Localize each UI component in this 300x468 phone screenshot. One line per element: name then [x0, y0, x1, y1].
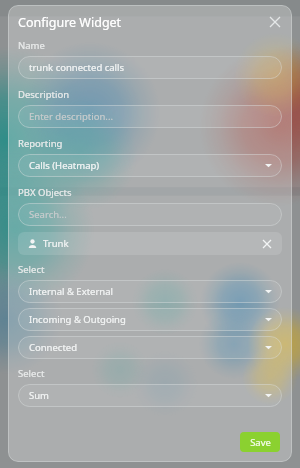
- button[interactable]: Close: [264, 11, 286, 33]
- staticText: Incoming & Outgoing: [29, 313, 126, 326]
- staticText: Select: [18, 263, 45, 276]
- button[interactable]: Internal & External: [18, 280, 282, 303]
- button[interactable]: Sum: [18, 384, 282, 407]
- staticText: Select: [18, 367, 45, 380]
- staticText: Internal & External: [29, 285, 114, 298]
- staticText: Enter description...: [29, 110, 113, 123]
- staticText: Reporting: [18, 137, 63, 150]
- staticText: Search...: [29, 208, 67, 221]
- staticText: Calls (Heatmap): [29, 159, 100, 172]
- button[interactable]: trunk connected calls: [18, 56, 282, 79]
- staticText: Sum: [29, 389, 49, 402]
- staticText: trunk connected calls: [29, 61, 125, 74]
- staticText: Description: [18, 88, 70, 101]
- button[interactable]: Save: [240, 432, 280, 452]
- staticText: PBX Objects: [18, 186, 72, 199]
- button[interactable]: Trunk: [18, 232, 282, 255]
- button[interactable]: Incoming & Outgoing: [18, 308, 282, 331]
- staticText: Connected: [29, 341, 78, 354]
- button[interactable]: Enter description...: [18, 105, 282, 128]
- button[interactable]: Search...: [18, 203, 282, 226]
- button[interactable]: Remove Trunk: [258, 235, 276, 253]
- staticText: Trunk: [43, 237, 69, 250]
- button[interactable]: Connected: [18, 336, 282, 359]
- staticText: Name: [18, 39, 45, 52]
- button[interactable]: Calls (Heatmap): [18, 154, 282, 177]
- staticText: Save: [250, 436, 271, 449]
- staticText: Configure Widget: [18, 14, 122, 31]
